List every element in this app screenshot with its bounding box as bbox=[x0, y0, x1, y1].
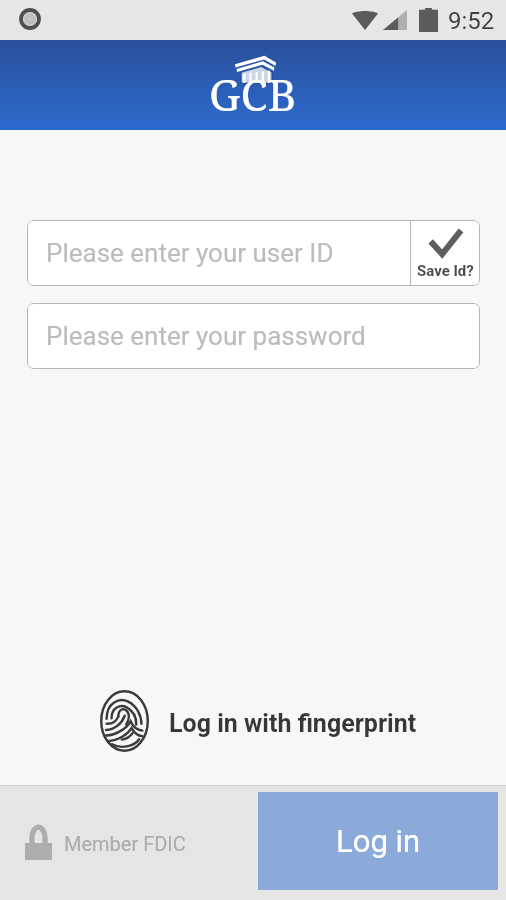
staticText: Please enter your user ID bbox=[46, 238, 334, 268]
button[interactable]: Log in with fingerprint bbox=[11, 686, 506, 756]
staticText: GCB bbox=[209, 64, 297, 124]
button[interactable]: Please enter your user ID bbox=[27, 220, 410, 286]
button[interactable]: Please enter your password bbox=[27, 303, 480, 369]
staticText: Please enter your password bbox=[46, 321, 366, 351]
button[interactable]: Please enter your user ID bbox=[27, 220, 480, 286]
staticText: Member FDIC bbox=[64, 832, 186, 855]
staticText: Log in bbox=[336, 823, 421, 859]
staticText: Save Id? bbox=[417, 262, 474, 280]
button[interactable]: Member FDIC bbox=[25, 825, 186, 861]
button[interactable]: Log in bbox=[258, 792, 498, 890]
staticText: 9:52 bbox=[448, 7, 495, 35]
button[interactable]: Save Id bbox=[411, 220, 480, 286]
staticText: Log in with fingerprint bbox=[169, 709, 417, 738]
